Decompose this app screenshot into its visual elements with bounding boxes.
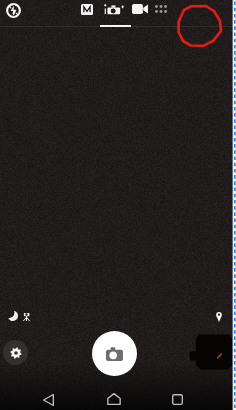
button[interactable]: Gallery <box>189 333 233 371</box>
button[interactable]: Settings <box>3 340 28 365</box>
button[interactable]: Home <box>106 391 122 407</box>
button[interactable]: Photo mode <box>102 2 125 17</box>
button[interactable]: Recent apps <box>170 392 185 407</box>
button[interactable]: Video mode <box>131 2 149 16</box>
button[interactable]: Manual mode <box>79 2 95 17</box>
button[interactable]: More modes <box>153 3 169 15</box>
button[interactable]: Back <box>40 392 56 408</box>
button[interactable]: Flash off <box>4 1 22 19</box>
button[interactable]: Take photo <box>92 331 137 376</box>
